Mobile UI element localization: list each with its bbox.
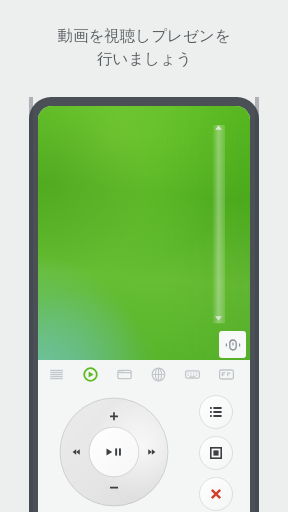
button[interactable]: Web: [146, 361, 170, 387]
button[interactable]: Frames: [214, 361, 238, 387]
button[interactable]: Stop: [198, 435, 234, 471]
button[interactable]: Slides: [112, 361, 136, 387]
button[interactable]: Presenter view: [219, 331, 246, 358]
staticText: 行いましょう: [97, 49, 192, 69]
button[interactable]: Close: [198, 476, 234, 512]
button[interactable]: Playlist: [198, 394, 234, 430]
button[interactable]: Keyboard: [180, 361, 204, 387]
staticText: 動画を視聴しプレゼンを: [57, 26, 231, 46]
button[interactable]: Play: [78, 361, 102, 387]
button[interactable]: Menu: [44, 361, 68, 387]
